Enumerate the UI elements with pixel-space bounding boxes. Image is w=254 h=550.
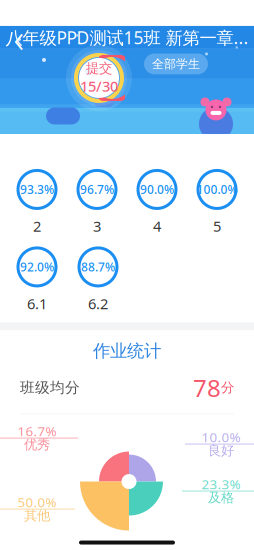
- staticText: 100.0%: [196, 181, 237, 197]
- staticText: 93.3%: [20, 181, 54, 197]
- staticText: 16.7%: [17, 422, 56, 440]
- staticText: 92.0%: [20, 259, 54, 275]
- staticText: 提交: [86, 60, 112, 76]
- staticText: 班级均分: [20, 379, 80, 397]
- staticText: 优秀: [24, 436, 50, 453]
- button[interactable]: 全部学生: [144, 54, 208, 74]
- staticText: 良好: [208, 442, 234, 459]
- staticText: 23.3%: [201, 475, 240, 493]
- button[interactable]: 90.0%: [128, 168, 186, 236]
- staticText: 15/30: [80, 76, 118, 96]
- staticText: 作业统计: [93, 340, 161, 362]
- staticText: 3: [93, 216, 101, 236]
- button[interactable]: Back: [0, 20, 38, 54]
- staticText: 4: [153, 216, 161, 236]
- button[interactable]: 92.0%: [8, 246, 66, 313]
- staticText: 2: [33, 216, 41, 236]
- staticText: 分: [221, 379, 234, 396]
- staticText: ‹: [13, 11, 24, 64]
- staticText: 88.7%: [81, 259, 115, 275]
- staticText: 5: [213, 216, 221, 236]
- button[interactable]: 100.0%: [188, 168, 246, 236]
- staticText: 96.7%: [80, 181, 114, 197]
- button[interactable]: 88.7%: [69, 246, 127, 313]
- staticText: 90.0%: [140, 181, 174, 197]
- staticText: 全部学生: [152, 57, 200, 71]
- staticText: 78: [193, 372, 221, 404]
- staticText: 6.1: [27, 294, 47, 313]
- button[interactable]: 96.7%: [68, 168, 126, 236]
- staticText: 及格: [208, 489, 234, 506]
- staticText: 50.0%: [17, 493, 56, 511]
- staticText: 其他: [24, 507, 50, 524]
- staticText: 八年级PPD测试15班 新第一章...: [5, 26, 248, 49]
- staticText: 6.2: [88, 294, 108, 313]
- button[interactable]: 93.3%: [8, 168, 66, 236]
- staticText: 10.0%: [201, 428, 240, 446]
